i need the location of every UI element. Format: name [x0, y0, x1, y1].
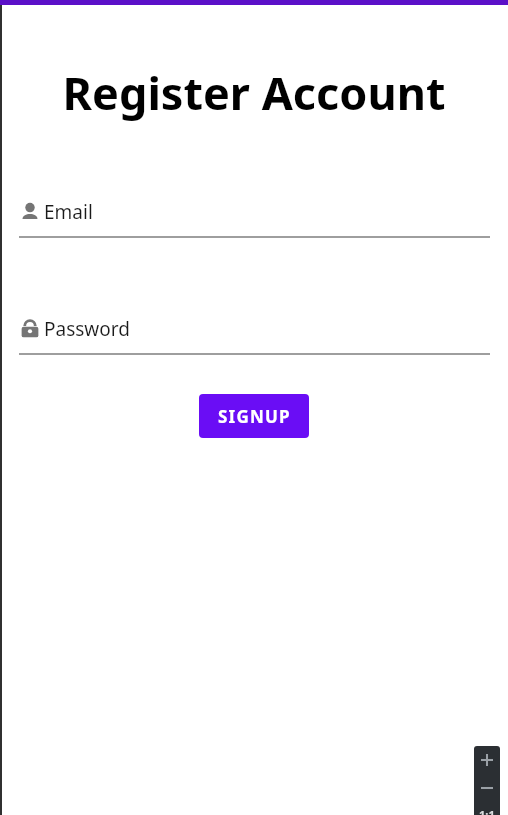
staticText: Email: [44, 199, 93, 225]
button[interactable]: Email: [19, 199, 490, 238]
button[interactable]: Password: [19, 316, 490, 355]
button[interactable]: SIGNUP: [199, 394, 309, 438]
button[interactable]: 1:1: [474, 802, 500, 815]
button[interactable]: Zoom in: [474, 746, 500, 774]
staticText: 1:1: [479, 807, 495, 815]
other: Email: [19, 201, 41, 223]
button[interactable]: Zoom out: [474, 774, 500, 802]
staticText: SIGNUP: [218, 405, 291, 428]
other: Password: [19, 318, 41, 340]
staticText: Password: [44, 316, 130, 342]
staticText: Register Account: [0, 62, 508, 123]
